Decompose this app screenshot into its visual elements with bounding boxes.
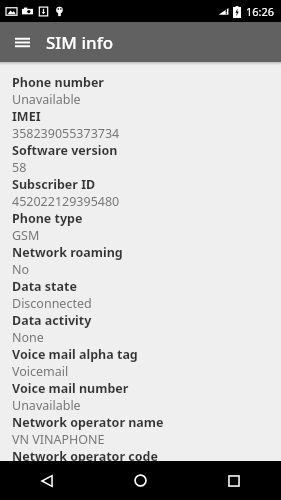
button[interactable]: Phone type bbox=[12, 210, 269, 244]
staticText: None bbox=[12, 329, 44, 346]
staticText: No bbox=[12, 261, 30, 278]
button[interactable]: Network operator code bbox=[12, 448, 269, 461]
button[interactable]: Voice mail alpha tag bbox=[12, 346, 269, 380]
staticText: Software version bbox=[12, 142, 118, 159]
staticText: VN VINAPHONE bbox=[12, 431, 105, 448]
staticText: Subscriber ID bbox=[12, 176, 96, 193]
button[interactable]: Software version bbox=[12, 142, 269, 176]
staticText: GSM bbox=[12, 227, 40, 244]
staticText: 16:26 bbox=[246, 4, 275, 19]
staticText: Data activity bbox=[12, 312, 92, 329]
button[interactable]: Phone number bbox=[12, 74, 269, 108]
staticText: Voicemail bbox=[12, 363, 69, 380]
staticText: Phone type bbox=[12, 210, 83, 227]
button[interactable]: Data activity bbox=[12, 312, 269, 346]
button[interactable]: Voice mail number bbox=[12, 380, 269, 414]
staticText: Disconnected bbox=[12, 295, 92, 312]
staticText: Phone number bbox=[12, 74, 104, 91]
button[interactable]: Open navigation menu bbox=[6, 26, 38, 58]
staticText: Network operator code bbox=[12, 448, 158, 461]
staticText: Unavailable bbox=[12, 91, 81, 108]
staticText: Voice mail number bbox=[12, 380, 129, 397]
staticText: 358239055373734 bbox=[12, 125, 120, 142]
staticText: Voice mail alpha tag bbox=[12, 346, 138, 363]
staticText: SIM info bbox=[46, 31, 114, 54]
button[interactable]: Home bbox=[93, 461, 187, 500]
button[interactable]: Network operator name bbox=[12, 414, 269, 448]
staticText: Unavailable bbox=[12, 397, 81, 414]
staticText: Network roaming bbox=[12, 244, 123, 261]
staticText: Data state bbox=[12, 278, 77, 295]
button[interactable]: Subscriber ID bbox=[12, 176, 269, 210]
staticText: IMEI bbox=[12, 108, 41, 125]
button[interactable]: Back bbox=[0, 461, 93, 500]
button[interactable]: Data state bbox=[12, 278, 269, 312]
button[interactable]: Network roaming bbox=[12, 244, 269, 278]
button[interactable]: Recent apps bbox=[187, 461, 281, 500]
button[interactable]: IMEI bbox=[12, 108, 269, 142]
staticText: 452022129395480 bbox=[12, 193, 120, 210]
staticText: 58 bbox=[12, 159, 27, 176]
staticText: Network operator name bbox=[12, 414, 164, 431]
